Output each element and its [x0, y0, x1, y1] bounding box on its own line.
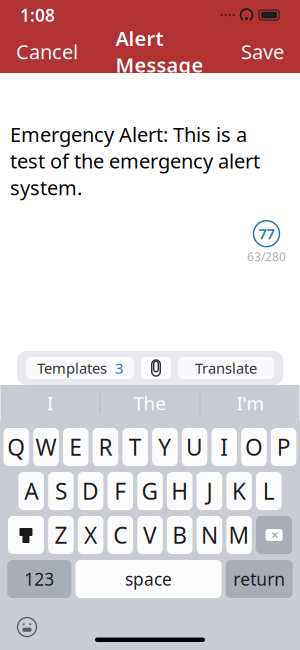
staticText: space [125, 567, 172, 590]
staticText: M [229, 520, 250, 550]
staticText: I'm [236, 391, 263, 415]
staticText: K [232, 476, 246, 506]
button[interactable]: B [167, 516, 192, 554]
button[interactable]: P [271, 428, 296, 466]
button[interactable]: G [137, 472, 163, 510]
button[interactable]: S [48, 472, 74, 510]
button[interactable]: 123 [7, 560, 71, 598]
button[interactable]: The [100, 385, 199, 421]
button[interactable]: Delete [256, 516, 292, 554]
staticText: N [201, 520, 218, 550]
staticText: × [271, 526, 279, 544]
button[interactable]: space [75, 560, 221, 598]
button[interactable]: Cancel [12, 32, 82, 71]
button[interactable]: I [0, 385, 99, 421]
button[interactable]: Y [152, 428, 178, 466]
button[interactable]: W [33, 428, 59, 466]
staticText: 1:08 [20, 3, 55, 26]
button[interactable]: R [93, 428, 118, 466]
staticText: Translate [195, 358, 257, 378]
staticText: 63/280 [247, 249, 286, 265]
staticText: S [55, 476, 67, 506]
button[interactable]: Emoji [12, 613, 42, 641]
staticText: X [84, 520, 97, 550]
button[interactable]: Attach file [141, 357, 171, 379]
staticText: O [245, 432, 263, 462]
staticText: F [114, 476, 126, 506]
staticText: Q [7, 432, 25, 462]
staticText: R [98, 432, 112, 462]
staticText: C [113, 520, 127, 550]
staticText: D [82, 476, 99, 506]
staticText: Y [158, 432, 171, 462]
button[interactable]: E [63, 428, 88, 466]
staticText: 123 [24, 567, 54, 590]
button[interactable]: Templates [26, 357, 134, 379]
button[interactable]: U [182, 428, 207, 466]
staticText: B [172, 520, 187, 550]
button[interactable]: Shift [8, 516, 44, 554]
button[interactable]: C [107, 516, 133, 554]
button[interactable]: V [137, 516, 163, 554]
button[interactable]: I [211, 428, 237, 466]
button[interactable]: Translate [178, 357, 274, 379]
button[interactable]: F [107, 472, 133, 510]
staticText: 77 [258, 224, 274, 243]
staticText: U [186, 432, 203, 462]
button[interactable]: I'm [200, 385, 299, 421]
button[interactable]: N [197, 516, 222, 554]
button[interactable]: Q [4, 428, 29, 466]
staticText: H [171, 476, 188, 506]
button[interactable]: J [197, 472, 222, 510]
button[interactable]: D [78, 472, 103, 510]
staticText: Cancel [16, 38, 78, 65]
staticText: L [263, 476, 275, 506]
button[interactable]: K [226, 472, 252, 510]
button[interactable]: A [18, 472, 44, 510]
staticText: T [129, 432, 142, 462]
staticText: A [24, 476, 38, 506]
button[interactable]: O [241, 428, 267, 466]
staticText: Alert Message [115, 25, 203, 78]
button[interactable]: X [78, 516, 103, 554]
button[interactable]: T [122, 428, 148, 466]
button[interactable]: M [226, 516, 252, 554]
button[interactable]: Z [48, 516, 74, 554]
button[interactable]: H [167, 472, 192, 510]
staticText: W [35, 432, 56, 462]
staticText: J [206, 476, 212, 506]
staticText: The [133, 391, 166, 415]
staticText: Templates [37, 358, 107, 378]
button[interactable]: return [226, 560, 293, 598]
button[interactable]: Save [237, 32, 288, 71]
staticText: Z [54, 520, 67, 550]
staticText: 3 [115, 358, 123, 378]
staticText: return [233, 567, 285, 590]
button[interactable]: L [256, 472, 281, 510]
staticText: V [143, 520, 157, 550]
staticText: I [220, 432, 228, 462]
staticText: I [47, 391, 53, 415]
staticText: E [69, 432, 82, 462]
staticText: G [141, 476, 158, 506]
staticText: Save [241, 38, 284, 65]
staticText: Emergency Alert: This is a test of the e… [10, 121, 260, 201]
staticText: P [277, 432, 291, 462]
